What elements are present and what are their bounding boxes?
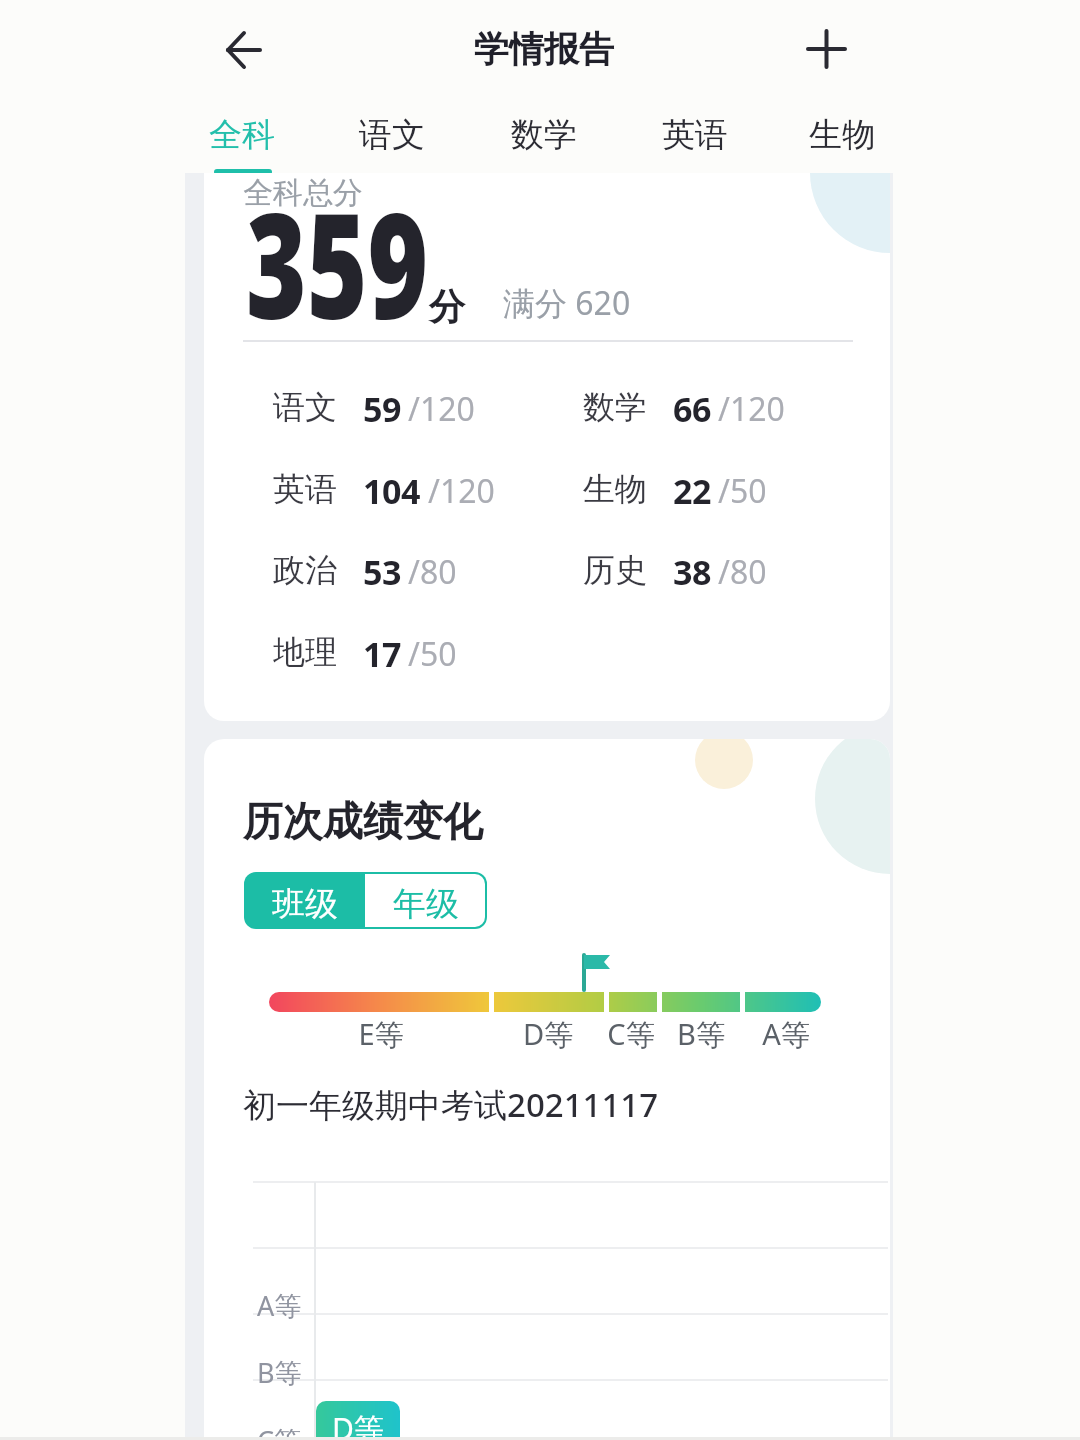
staticText: /120 — [718, 387, 785, 431]
staticText: 政治 — [273, 550, 337, 590]
staticText: D等 — [518, 1014, 578, 1054]
staticText: 语文 — [273, 387, 337, 427]
staticText: /120 — [428, 469, 495, 513]
button[interactable]: 数学 — [484, 114, 604, 156]
staticText: /80 — [408, 550, 457, 594]
staticText: 22 — [673, 468, 711, 514]
staticText: C等 — [257, 1422, 302, 1440]
staticText: /120 — [408, 387, 475, 431]
staticText: 分 — [429, 284, 465, 329]
button[interactable]: 年级 — [365, 883, 487, 925]
staticText: D等 — [316, 1408, 400, 1440]
staticText: 全科总分 — [243, 174, 363, 212]
staticText: A等 — [756, 1014, 816, 1054]
staticText: 59 — [363, 386, 401, 432]
staticText: C等 — [601, 1014, 661, 1054]
staticText: 历次成绩变化 — [243, 796, 483, 846]
staticText: 66 — [673, 386, 711, 432]
button[interactable]: 班级 — [244, 883, 366, 925]
staticText: 初一年级期中考试20211117 — [243, 1082, 659, 1127]
staticText: 104 — [363, 468, 420, 514]
staticText: B等 — [671, 1014, 731, 1054]
staticText: /50 — [408, 632, 457, 676]
staticText: 53 — [363, 549, 401, 595]
staticText: B等 — [257, 1354, 302, 1391]
staticText: 学情报告 — [399, 27, 689, 71]
staticText: /50 — [718, 469, 767, 513]
button[interactable]: D等 — [316, 1401, 400, 1440]
staticText: 17 — [363, 631, 401, 677]
staticText: 地理 — [273, 632, 337, 672]
button[interactable]: 英语 — [635, 114, 755, 156]
button[interactable] — [797, 19, 857, 79]
staticText: 数学 — [583, 387, 647, 427]
button[interactable]: 全科 — [182, 114, 302, 156]
staticText: 英语 — [273, 469, 337, 509]
staticText: E等 — [351, 1014, 411, 1054]
staticText: 满分 620 — [503, 281, 631, 325]
staticText: A等 — [257, 1287, 302, 1324]
button[interactable] — [214, 20, 274, 80]
staticText: 38 — [673, 549, 711, 595]
staticText: 359 — [246, 173, 428, 362]
button[interactable]: 生物 — [782, 114, 902, 156]
staticText: 历史 — [583, 550, 647, 590]
staticText: /80 — [718, 550, 767, 594]
button[interactable]: 语文 — [332, 114, 452, 156]
staticText: 生物 — [583, 469, 647, 509]
